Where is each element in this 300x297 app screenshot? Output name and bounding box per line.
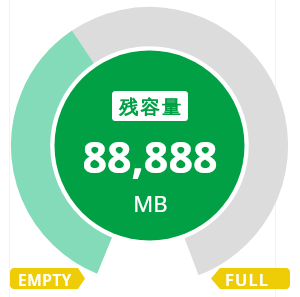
- button[interactable]: EMPTY: [10, 268, 85, 289]
- staticText: 残容量: [119, 96, 183, 120]
- staticText: 88,888: [82, 127, 218, 186]
- staticText: EMPTY: [18, 269, 72, 290]
- button[interactable]: FULL: [211, 268, 290, 289]
- staticText: MB: [133, 188, 168, 218]
- button[interactable]: 残容量: [112, 91, 188, 121]
- staticText: FULL: [225, 268, 270, 289]
- other: Remaining capacity gauge: [0, 0, 300, 297]
